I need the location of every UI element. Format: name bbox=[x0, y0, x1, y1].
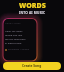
staticText: Create Song bbox=[22, 64, 42, 68]
staticText: INTO AI MUSIC bbox=[19, 11, 46, 15]
staticText: fading into rain bbox=[5, 33, 23, 36]
staticText: Neon city lights bbox=[5, 29, 23, 32]
staticText: the city sings back bbox=[5, 37, 26, 40]
staticText: in electric blue bbox=[5, 41, 22, 44]
staticText: Synthwave 120 BPM bbox=[8, 48, 30, 51]
staticText: YOUR LYRICS bbox=[5, 22, 21, 25]
staticText: WORDS bbox=[19, 1, 46, 11]
button[interactable]: Create Song bbox=[3, 62, 61, 70]
